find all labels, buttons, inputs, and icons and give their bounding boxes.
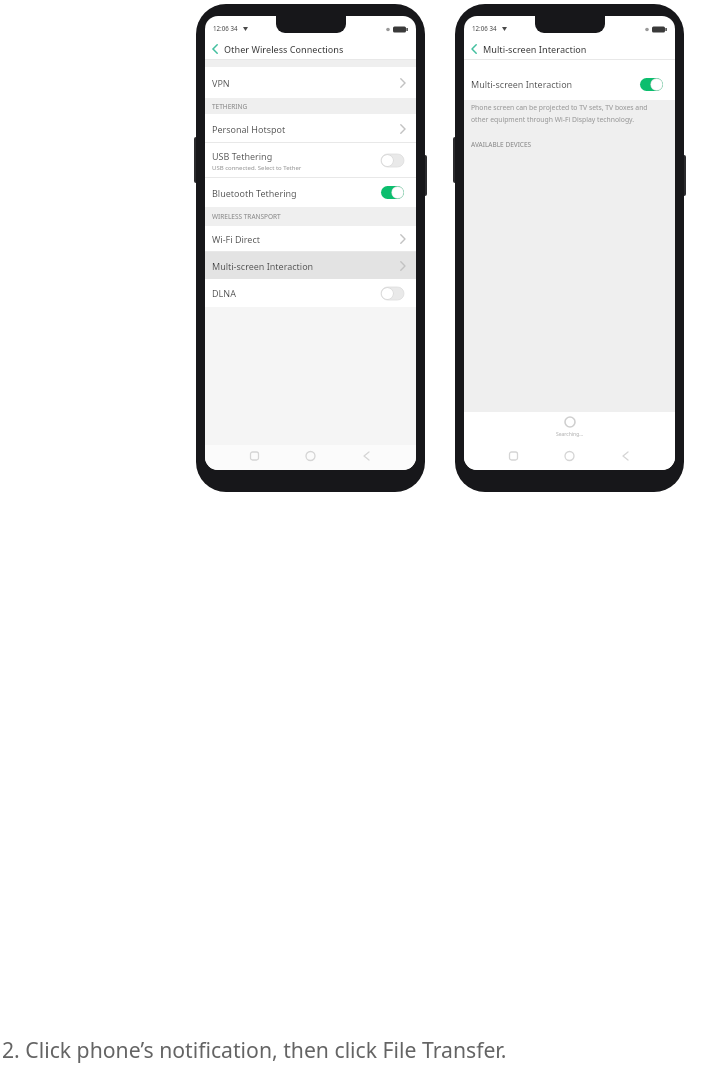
button[interactable]: Bluetooth Tethering [205,178,416,207]
staticText: other equipment through Wi-Fi Display te… [471,115,635,124]
staticText: Searching... [556,431,584,438]
staticText: Phone screen can be projected to TV sets… [471,103,648,112]
staticText: DLNA [212,287,236,299]
button[interactable]: VPN [205,67,416,98]
staticText: Multi-screen Interaction [212,260,314,272]
staticText: Bluetooth Tethering [212,187,297,199]
staticText: TETHERING [212,102,248,111]
button[interactable]: Multi-screen Interaction [464,60,675,100]
button[interactable]: Wi-Fi Direct [205,226,416,252]
staticText: AVAILABLE DEVICES [471,140,532,149]
staticText: Personal Hotspot [212,123,286,135]
staticText: 12:06 34 [213,24,238,32]
button[interactable]: Multi-screen Interaction [464,38,675,59]
staticText: Wi-Fi Direct [212,233,260,245]
button[interactable]: USB Tethering [205,143,416,178]
staticText: VPN [212,77,230,89]
staticText: Multi-screen Interaction [483,43,587,55]
button[interactable]: Multi-screen Interaction [205,252,416,279]
staticText: 12:06 34 [472,24,497,32]
staticText: WIRELESS TRANSPORT [212,212,281,221]
staticText: 2. Click phone’s notification, then clic… [2,1035,507,1064]
staticText: USB Tethering [212,150,273,162]
button[interactable]: DLNA [205,279,416,307]
button[interactable]: Other Wireless Connections [205,38,416,59]
staticText: Other Wireless Connections [224,43,344,55]
button[interactable]: Personal Hotspot [205,114,416,143]
staticText: USB connected. Select to Tether [212,164,302,172]
staticText: Multi-screen Interaction [471,78,573,90]
